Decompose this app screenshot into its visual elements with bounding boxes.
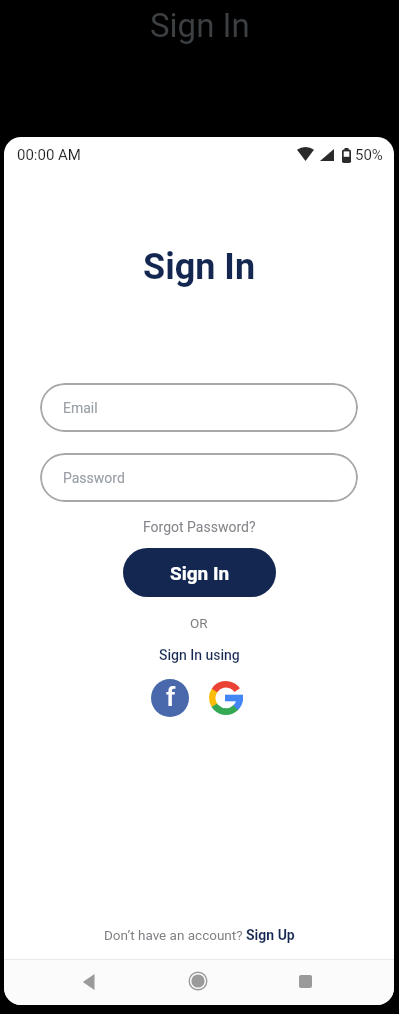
staticText: 50% [355, 146, 383, 164]
staticText: OR [190, 615, 208, 631]
staticText: Don’t have an account? [104, 927, 246, 943]
button[interactable] [209, 681, 243, 715]
staticText: Sign In [150, 6, 250, 45]
staticText: 00:00 AM [17, 146, 81, 164]
staticText: Forgot Password? [143, 519, 256, 535]
button[interactable]: f [151, 679, 189, 717]
button[interactable]: Email [40, 383, 358, 432]
staticText: Password [63, 470, 125, 486]
staticText: Sign In using [159, 647, 240, 663]
staticText: Sign Up [246, 927, 295, 943]
button[interactable]: Password [40, 453, 358, 502]
staticText: Sign In [170, 562, 230, 584]
staticText: Sign In [143, 246, 256, 288]
button[interactable]: Sign Up [246, 927, 295, 943]
button[interactable]: Sign In [123, 548, 276, 597]
staticText: f [166, 682, 176, 712]
staticText: Email [63, 400, 98, 416]
button[interactable] [82, 974, 98, 990]
button[interactable]: Forgot Password? [143, 519, 256, 535]
button[interactable] [299, 975, 312, 988]
button[interactable] [188, 971, 208, 991]
